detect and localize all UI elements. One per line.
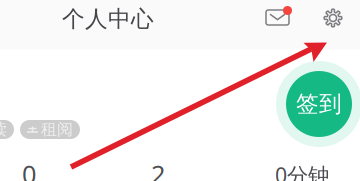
button[interactable]: 0 [0, 159, 77, 181]
button[interactable]: 0分钟 [254, 160, 350, 181]
button[interactable]: Messages [264, 5, 294, 35]
button[interactable]: 2 [110, 159, 206, 181]
button[interactable]: 签到 [276, 61, 360, 147]
staticText: 租阅 [41, 120, 73, 139]
staticText: 0 [22, 157, 36, 181]
staticText: 阅读 [0, 120, 7, 139]
button[interactable]: Settings [318, 3, 348, 33]
staticText: 0分钟 [275, 161, 329, 181]
staticText: 个人中心 [62, 5, 154, 33]
staticText: 签到 [296, 90, 342, 118]
button[interactable]: 阅读 [0, 120, 14, 139]
staticText: 2 [151, 157, 165, 181]
button[interactable]: 租阅 [20, 120, 80, 139]
